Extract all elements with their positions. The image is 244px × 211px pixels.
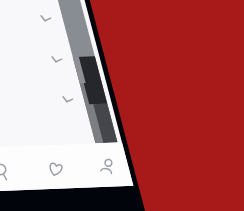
button[interactable]: Favourites (29, 148, 81, 190)
button[interactable]: Profile (81, 145, 133, 187)
button[interactable]: Expand section (41, 44, 71, 74)
button[interactable]: Expand section (30, 3, 60, 33)
button[interactable]: Expand section (52, 84, 82, 114)
button[interactable]: Search (0, 150, 27, 192)
